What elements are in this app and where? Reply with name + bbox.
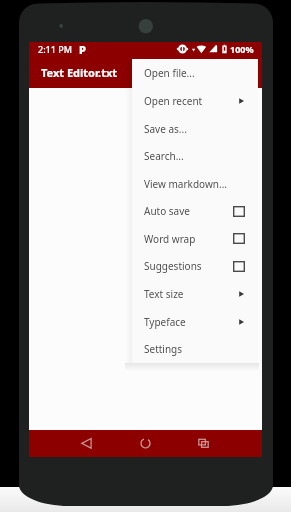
button[interactable]: Typeface bbox=[132, 308, 258, 335]
staticText: View markdown... bbox=[144, 177, 227, 191]
staticText: Typeface bbox=[144, 315, 186, 329]
button[interactable]: View markdown... bbox=[132, 170, 258, 197]
staticText: Open file... bbox=[144, 66, 195, 80]
staticText: 2:11 PM bbox=[38, 43, 72, 55]
staticText: Text Editor.txt bbox=[41, 65, 118, 80]
staticText: P bbox=[79, 42, 86, 56]
button[interactable]: Back bbox=[74, 430, 99, 457]
staticText: Text size bbox=[144, 287, 184, 301]
button[interactable]: Recent apps bbox=[191, 430, 216, 457]
staticText: Search... bbox=[144, 149, 184, 163]
button[interactable]: Auto save bbox=[132, 197, 258, 225]
button[interactable]: Home bbox=[133, 430, 158, 457]
button[interactable]: Settings bbox=[132, 335, 258, 363]
staticText: Word wrap bbox=[144, 232, 196, 246]
staticText: Suggestions bbox=[144, 259, 202, 273]
staticText: 100% bbox=[230, 43, 254, 55]
staticText: Auto save bbox=[144, 204, 190, 218]
button[interactable]: Word wrap bbox=[132, 225, 258, 252]
staticText: Settings bbox=[144, 342, 183, 356]
staticText: Save as... bbox=[144, 122, 187, 136]
button[interactable]: Suggestions bbox=[132, 252, 258, 280]
button[interactable]: Open file... bbox=[132, 59, 258, 87]
staticText: Open recent bbox=[144, 94, 203, 108]
button[interactable]: Text size bbox=[132, 280, 258, 308]
button[interactable]: Save as... bbox=[132, 115, 258, 142]
button[interactable]: Open recent bbox=[132, 87, 258, 115]
button[interactable]: Search... bbox=[132, 142, 258, 170]
